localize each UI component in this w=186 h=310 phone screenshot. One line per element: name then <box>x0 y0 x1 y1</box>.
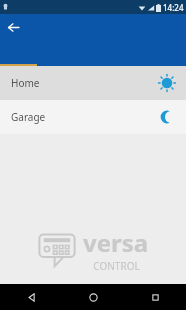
button[interactable]: Recents <box>124 284 186 310</box>
button[interactable]: Back <box>0 14 26 40</box>
staticText: Garage <box>11 110 159 124</box>
staticText: CONTROL <box>93 259 140 272</box>
button[interactable]: Home <box>0 66 186 100</box>
staticText: versa <box>83 226 149 259</box>
button[interactable]: Home <box>62 284 124 310</box>
button[interactable]: Back <box>0 284 62 310</box>
button[interactable]: Garage <box>0 100 186 134</box>
staticText: Home <box>11 76 159 90</box>
staticText: 14:24 <box>163 2 184 13</box>
